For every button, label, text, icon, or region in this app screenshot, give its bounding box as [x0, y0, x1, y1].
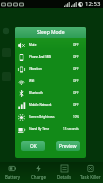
staticText: OFF [73, 103, 79, 107]
staticText: OK [30, 143, 37, 150]
staticText: 12:53 [85, 0, 101, 8]
staticText: OFF [73, 91, 79, 95]
staticText: Details [57, 174, 72, 180]
button[interactable]: Screen Brightness [15, 111, 86, 123]
staticText: Mobile Network [29, 103, 52, 107]
staticText: Phone And SMS [29, 55, 52, 59]
staticText: OFF [73, 67, 79, 71]
button[interactable]: Details [51, 162, 77, 183]
button[interactable]: Mobile Network [15, 99, 86, 111]
button[interactable]: Mute [15, 39, 86, 51]
button[interactable]: Bluetooth [15, 87, 86, 99]
button[interactable]: Charge [25, 162, 51, 183]
staticText: 10% [73, 115, 79, 119]
staticText: Task Killer [80, 174, 101, 180]
staticText: 15 seconds [63, 127, 79, 131]
button[interactable]: Vibration [15, 63, 86, 75]
staticText: Mute [29, 43, 37, 47]
staticText: Preview [59, 143, 77, 150]
staticText: OFF [73, 43, 79, 47]
button[interactable]: Battery [0, 162, 25, 183]
staticText: Vibration [29, 67, 42, 71]
button[interactable]: Wifi [15, 75, 86, 87]
staticText: Sleep Mode [37, 29, 65, 36]
staticText: Screen Brightness [29, 115, 55, 119]
button[interactable]: Task Killer [77, 162, 103, 183]
staticText: Stand By Time [29, 127, 50, 131]
staticText: Wifi [29, 79, 35, 83]
button[interactable]: Preview [56, 141, 80, 151]
button[interactable]: Stand By Time [15, 123, 86, 135]
staticText: Charge [31, 174, 46, 180]
staticText: Bluetooth [29, 91, 43, 95]
button[interactable]: Phone And SMS [15, 51, 86, 63]
staticText: OFF [73, 79, 79, 83]
button[interactable]: OK [21, 141, 45, 151]
staticText: Battery [5, 174, 21, 180]
staticText: OFF [73, 55, 79, 59]
